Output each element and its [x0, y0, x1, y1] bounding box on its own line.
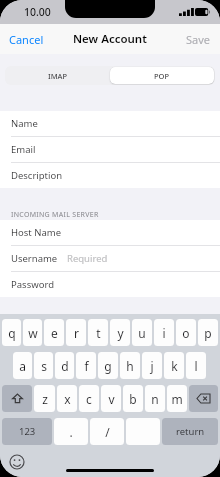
button[interactable]: Cancel: [0, 27, 53, 52]
button[interactable]: r: [66, 319, 86, 346]
button[interactable]: Emoji keyboard: [9, 454, 25, 470]
staticText: m: [171, 391, 183, 407]
button[interactable]: z: [34, 385, 55, 412]
staticText: Required: [67, 252, 108, 265]
button[interactable]: c: [79, 385, 99, 412]
button[interactable]: f: [76, 352, 96, 379]
button[interactable]: y: [110, 319, 130, 346]
button[interactable]: Save: [177, 27, 220, 52]
button[interactable]: v: [101, 385, 121, 412]
staticText: s: [41, 358, 47, 374]
button[interactable]: e: [44, 319, 64, 346]
staticText: u: [138, 325, 146, 341]
button[interactable]: t: [88, 319, 108, 346]
button[interactable]: Name: [0, 111, 220, 137]
staticText: i: [162, 325, 166, 341]
button[interactable]: Space: [126, 418, 160, 445]
button[interactable]: d: [55, 352, 74, 379]
button[interactable]: u: [132, 319, 152, 346]
staticText: p: [204, 325, 212, 341]
staticText: POP: [154, 71, 170, 81]
staticText: 123: [19, 425, 36, 438]
staticText: n: [151, 391, 159, 407]
staticText: x: [64, 391, 71, 407]
staticText: e: [51, 325, 58, 341]
button[interactable]: Email: [0, 137, 220, 163]
button[interactable]: h: [120, 352, 140, 379]
staticText: a: [19, 358, 26, 374]
button[interactable]: i: [154, 319, 174, 346]
button[interactable]: o: [176, 319, 196, 346]
staticText: Save: [186, 32, 211, 47]
button[interactable]: .: [54, 418, 88, 445]
staticText: c: [86, 391, 92, 407]
staticText: g: [104, 358, 112, 374]
staticText: Description: [11, 169, 63, 182]
staticText: Name: [11, 117, 38, 130]
staticText: Username: [11, 252, 58, 265]
button[interactable]: Backspace: [189, 385, 218, 412]
staticText: Email: [11, 143, 36, 156]
staticText: IMAP: [48, 71, 68, 81]
staticText: Cancel: [9, 32, 44, 47]
button[interactable]: POP: [110, 67, 214, 84]
staticText: o: [182, 325, 190, 341]
button[interactable]: p: [198, 319, 218, 346]
staticText: Password: [11, 278, 54, 291]
button[interactable]: x: [57, 385, 77, 412]
staticText: h: [126, 358, 134, 374]
staticText: f: [84, 358, 89, 374]
button[interactable]: /: [90, 418, 124, 445]
staticText: q: [8, 325, 16, 341]
button[interactable]: s: [34, 352, 53, 379]
staticText: 10.00: [24, 5, 51, 19]
staticText: y: [117, 325, 124, 341]
button[interactable]: 123: [2, 418, 52, 445]
staticText: w: [28, 325, 38, 341]
button[interactable]: b: [123, 385, 143, 412]
button[interactable]: g: [98, 352, 118, 379]
staticText: b: [129, 391, 137, 407]
button[interactable]: l: [186, 352, 206, 379]
button[interactable]: w: [23, 319, 42, 346]
staticText: l: [194, 358, 198, 374]
staticText: Host Name: [11, 226, 62, 239]
staticText: j: [150, 358, 154, 374]
button[interactable]: a: [13, 352, 32, 379]
staticText: r: [74, 325, 79, 341]
staticText: t: [96, 325, 101, 341]
button[interactable]: q: [2, 319, 21, 346]
staticText: d: [61, 358, 69, 374]
button[interactable]: k: [164, 352, 184, 379]
staticText: .: [69, 424, 73, 440]
staticText: return: [176, 425, 205, 438]
button[interactable]: Username: [0, 246, 220, 272]
button[interactable]: Host Name: [0, 220, 220, 246]
staticText: New Account: [73, 31, 147, 47]
staticText: INCOMING MAIL SERVER: [11, 210, 99, 220]
button[interactable]: Password: [0, 272, 220, 297]
staticText: /: [105, 424, 110, 440]
button[interactable]: Shift: [2, 385, 32, 412]
button[interactable]: IMAP: [6, 67, 110, 84]
staticText: z: [42, 391, 48, 407]
button[interactable]: m: [167, 385, 187, 412]
button[interactable]: j: [142, 352, 162, 379]
button[interactable]: return: [162, 418, 218, 445]
button[interactable]: n: [145, 385, 165, 412]
staticText: k: [171, 358, 178, 374]
button[interactable]: Description: [0, 163, 220, 188]
staticText: v: [108, 391, 115, 407]
